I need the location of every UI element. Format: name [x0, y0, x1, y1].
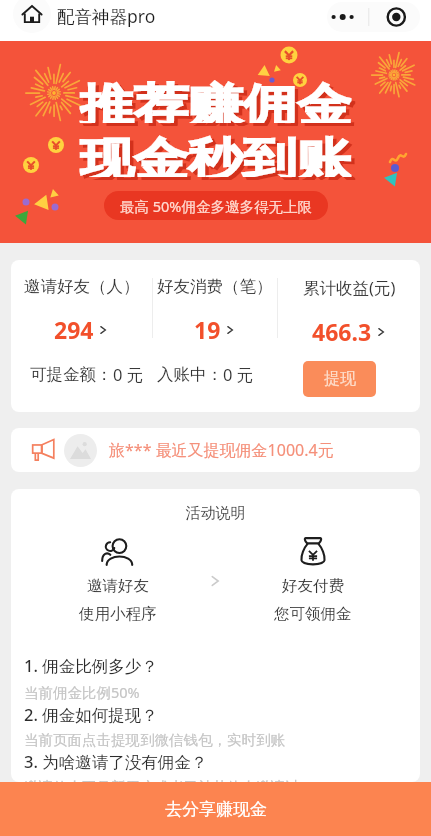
button[interactable]: 邀请好友（人）: [11, 268, 152, 348]
staticText: 邀请好友（人）: [24, 276, 140, 297]
staticText: 活动说明: [11, 504, 420, 523]
staticText: 1. 佣金比例多少？: [24, 654, 158, 677]
button[interactable]: More options: [327, 2, 420, 32]
staticText: 现金秒到账: [79, 132, 352, 177]
staticText: 0 元: [113, 363, 144, 386]
button[interactable]: 好友消费（笔）: [153, 268, 277, 348]
staticText: 推荐赚佣金: [83, 81, 355, 126]
staticText: 当前页面点击提现到微信钱包，实时到账: [24, 731, 285, 749]
staticText: 好友付费: [282, 576, 344, 596]
staticText: 19: [194, 314, 221, 345]
staticText: 最高 50%佣金多邀多得无上限: [120, 196, 312, 216]
staticText: 3. 为啥邀请了没有佣金？: [24, 750, 208, 773]
staticText: 去分享赚现金: [165, 799, 267, 820]
button[interactable]: Home: [13, 0, 51, 33]
staticText: 现金秒到账: [83, 135, 355, 180]
staticText: 当前佣金比例50%: [24, 682, 140, 702]
staticText: 0 元: [223, 363, 254, 386]
button[interactable]: 去分享赚现金: [0, 782, 431, 836]
staticText: 入账中：: [157, 364, 223, 385]
button[interactable]: 累计收益(元): [278, 268, 420, 348]
staticText: 466.3: [312, 316, 372, 347]
button[interactable]: 提现: [303, 361, 376, 397]
staticText: 邀请好友: [87, 576, 149, 596]
staticText: 邀请的人不是新用户或者已被其他人邀请过: [24, 778, 300, 782]
staticText: 提现: [324, 369, 356, 389]
staticText: 可提金额：: [30, 364, 113, 385]
staticText: 旅*** 最近又提现佣金1000.4元: [109, 439, 334, 461]
staticText: 2. 佣金如何提现？: [24, 703, 158, 726]
button[interactable]: 旅*** 最近又提现佣金1000.4元: [11, 428, 420, 472]
staticText: 好友消费（笔）: [157, 276, 273, 297]
staticText: 使用小程序: [79, 604, 157, 624]
staticText: 您可领佣金: [274, 604, 352, 624]
staticText: 配音神器pro: [57, 4, 156, 28]
staticText: 294: [54, 314, 94, 345]
staticText: 累计收益(元): [303, 276, 396, 299]
staticText: 推荐赚佣金: [79, 78, 352, 123]
